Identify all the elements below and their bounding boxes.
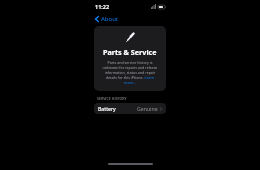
staticText: SERVICE HISTORY — [97, 96, 127, 101]
staticText: Battery — [98, 105, 116, 112]
staticText: About — [101, 15, 119, 23]
button[interactable]: Battery — [94, 103, 166, 114]
staticText: Parts and service history is unknown for… — [100, 60, 160, 85]
staticText: Genuine — [137, 105, 158, 112]
staticText: Parts & Service — [103, 47, 157, 57]
button[interactable]: About — [94, 13, 120, 24]
button[interactable]: Parts and service — [94, 26, 166, 91]
other: Parts and service — [125, 32, 136, 43]
staticText: 11:22 — [95, 3, 110, 10]
